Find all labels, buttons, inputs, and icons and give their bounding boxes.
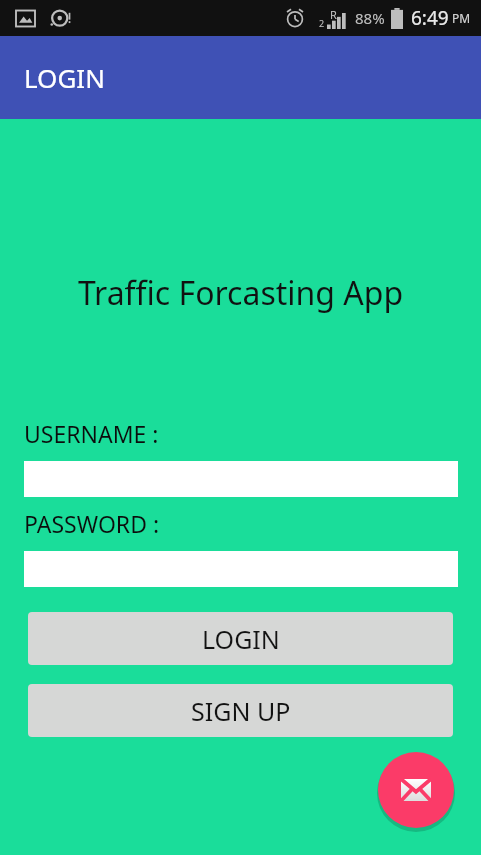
staticText: PM [452,10,471,26]
staticText: 2 [319,17,325,29]
staticText: 88% [355,8,385,28]
button[interactable]: LOGIN [28,612,453,665]
staticText: 6:49 [411,5,449,31]
button[interactable]: SIGN UP [28,684,453,737]
staticText: PASSWORD : [24,508,160,539]
staticText: USERNAME : [24,418,159,449]
staticText: LOGIN [24,60,105,95]
staticText: R [330,7,337,22]
staticText: SIGN UP [191,694,291,728]
staticText: LOGIN [202,622,280,656]
staticText: Traffic Forcasting App [0,271,481,315]
button[interactable]: Send message [378,752,454,828]
